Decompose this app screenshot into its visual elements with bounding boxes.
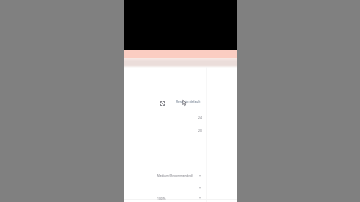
staticText: Medium (Recommended): [157, 174, 193, 178]
button[interactable]: 20: [124, 126, 237, 134]
staticText: 100%: [157, 196, 166, 200]
other: Fit to screen: [160, 101, 165, 106]
button[interactable]: 24: [124, 113, 237, 121]
button[interactable]: Fit to screen: [156, 96, 204, 109]
staticText: Reset to default: [176, 99, 201, 103]
staticText: 20: [198, 128, 202, 132]
staticText: 24: [198, 115, 202, 119]
button[interactable]: Medium (Recommended): [124, 171, 237, 180]
button[interactable]: 100%: [124, 193, 237, 202]
